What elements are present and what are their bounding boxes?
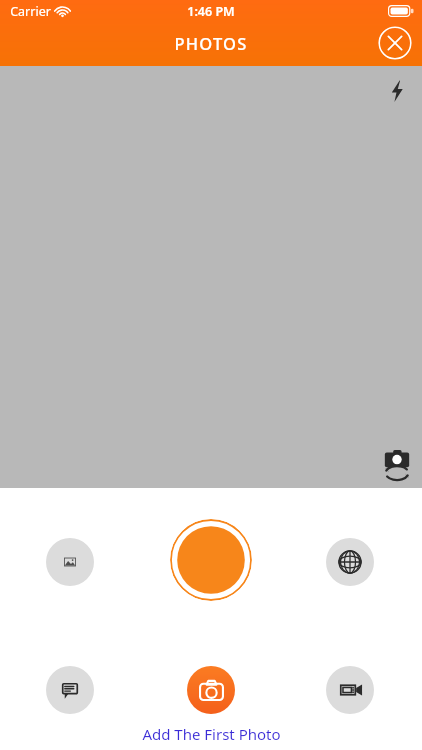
staticText: PHOTOS: [174, 32, 248, 54]
button[interactable]: Shutter: [170, 519, 252, 601]
button[interactable]: Video: [326, 666, 374, 714]
staticText: Add The First Photo: [142, 724, 281, 744]
button[interactable]: Gallery: [46, 538, 94, 586]
button[interactable]: Take photo: [187, 666, 235, 714]
staticText: Carrier: [10, 3, 51, 20]
button[interactable]: Switch camera: [378, 448, 416, 480]
button[interactable]: Close: [378, 26, 412, 60]
staticText: 1:46 PM: [187, 3, 235, 20]
button[interactable]: Globe: [326, 538, 374, 586]
button[interactable]: Comments: [46, 666, 94, 714]
button[interactable]: Add The First Photo: [0, 718, 422, 750]
button[interactable]: Flash: [384, 78, 410, 104]
